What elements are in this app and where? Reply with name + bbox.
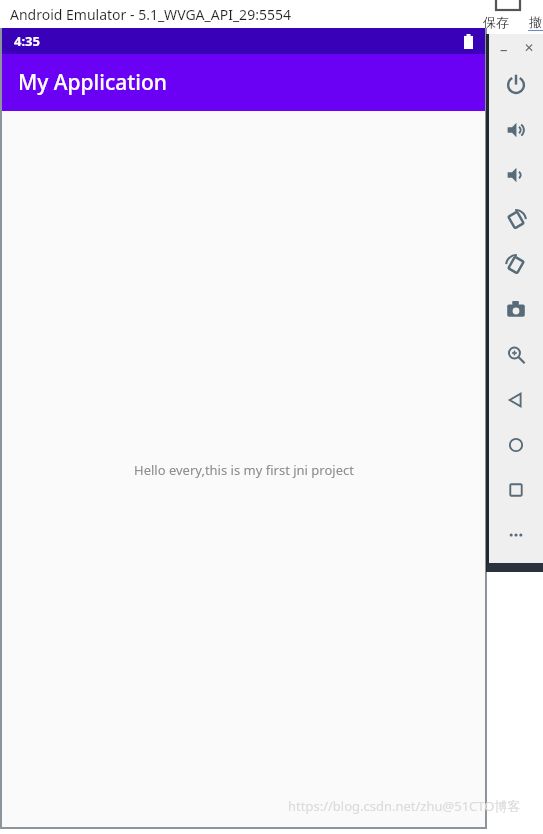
button[interactable]: Rotate left (502, 206, 530, 234)
staticText: https://blog.csdn.net/zhu@51CTO博客 (288, 797, 521, 815)
staticText: 4:35 (14, 32, 40, 50)
staticText: Android Emulator - 5.1_WVGA_API_29:5554 (10, 5, 291, 24)
staticText: 保存 (483, 14, 509, 30)
button[interactable]: Home (502, 431, 530, 459)
button[interactable]: Volume up (502, 116, 530, 144)
button[interactable]: Rotate right (502, 251, 530, 279)
button[interactable]: Back (502, 386, 530, 414)
button[interactable]: – (500, 39, 508, 59)
button[interactable]: Volume down (502, 161, 530, 189)
button[interactable]: Power (502, 71, 530, 99)
button[interactable]: ✕ (524, 41, 535, 55)
button[interactable]: More (502, 521, 530, 549)
button[interactable]: Overview (502, 476, 530, 504)
staticText: 撤 (529, 14, 542, 30)
staticText: Hello every,this is my first jni project (134, 461, 354, 479)
button[interactable]: Zoom (502, 341, 530, 369)
staticText: My Application (18, 68, 167, 97)
button[interactable]: My Application (2, 54, 485, 111)
button[interactable]: Take screenshot (502, 296, 530, 324)
